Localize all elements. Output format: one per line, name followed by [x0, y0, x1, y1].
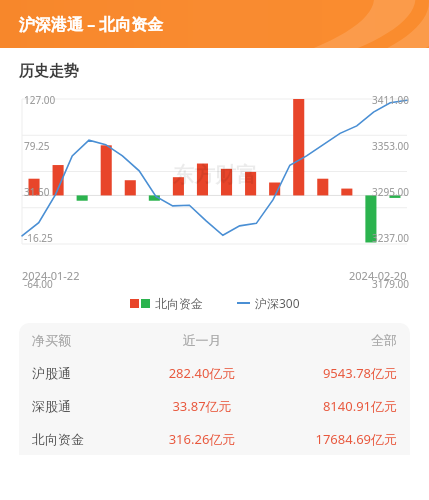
staticText: 历史走势 [19, 62, 79, 81]
button[interactable]: 北向资金 [130, 296, 203, 311]
staticText: 全部 [267, 332, 397, 348]
staticText: 沪深港通 – 北向资金 [19, 13, 164, 35]
staticText: 8140.91亿元 [267, 397, 397, 415]
button[interactable]: 深股通 [19, 389, 410, 422]
staticText: 3295.00 [372, 185, 409, 199]
button[interactable]: 净买额 [19, 323, 410, 356]
staticText: 31.50 [24, 185, 50, 199]
staticText: 127.00 [24, 93, 56, 107]
staticText: 深股通 [32, 398, 137, 414]
staticText: 净买额 [32, 332, 137, 348]
staticText: 33.87亿元 [137, 397, 267, 415]
staticText: 17684.69亿元 [267, 430, 397, 448]
staticText: 东方财富 [173, 162, 257, 188]
staticText: 北向资金 [155, 296, 203, 311]
staticText: 北向资金 [32, 431, 137, 447]
button[interactable]: 北向资金 [19, 422, 410, 455]
staticText: 316.26亿元 [137, 430, 267, 448]
staticText: 79.25 [24, 139, 50, 153]
staticText: 9543.78亿元 [267, 364, 397, 382]
staticText: 沪深300 [255, 295, 300, 311]
staticText: 3179.00 [372, 277, 409, 291]
staticText: 近一月 [137, 332, 267, 348]
button[interactable]: 沪股通 [19, 356, 410, 389]
staticText: 3237.00 [372, 231, 409, 245]
staticText: 2024-02-20 [349, 268, 407, 283]
staticText: 2024-01-22 [22, 268, 80, 283]
button[interactable]: 沪深300 [237, 295, 300, 311]
staticText: -64.00 [24, 277, 53, 291]
staticText: 3411.00 [372, 93, 409, 107]
staticText: 282.40亿元 [137, 364, 267, 382]
staticText: 3353.00 [372, 139, 409, 153]
staticText: 沪股通 [32, 365, 137, 381]
staticText: -16.25 [24, 231, 53, 245]
